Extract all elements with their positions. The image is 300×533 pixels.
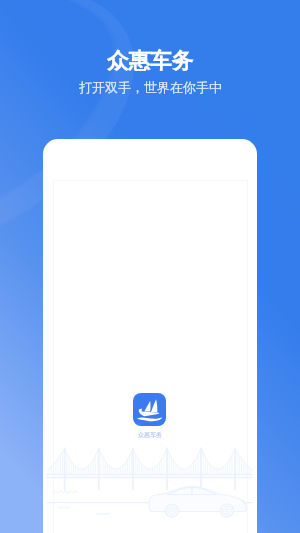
- staticText: 众惠车务: [138, 431, 162, 439]
- staticText: 打开双手，世界在你手中: [79, 79, 222, 95]
- staticText: 众惠车务: [107, 47, 193, 74]
- button[interactable]: 众惠车务 app: [133, 393, 166, 426]
